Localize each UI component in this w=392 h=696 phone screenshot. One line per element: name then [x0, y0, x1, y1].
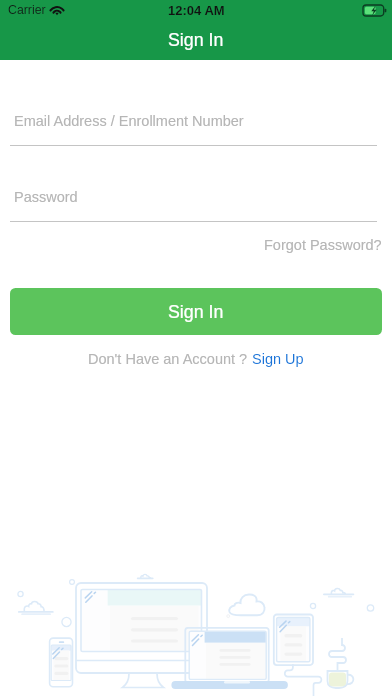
button[interactable]: Forgot Password?	[264, 237, 382, 253]
button[interactable]: Sign In	[10, 288, 382, 335]
staticText: Sign In	[168, 302, 224, 322]
button[interactable]: Sign Up	[252, 351, 304, 367]
other: Battery charging	[363, 5, 386, 16]
staticText: Sign Up	[252, 351, 304, 367]
staticText: Carrier	[8, 3, 46, 17]
staticText: Email Address / Enrollment Number	[14, 113, 244, 129]
staticText: Forgot Password?	[264, 237, 382, 253]
staticText: Password	[14, 189, 78, 205]
staticText: Sign In	[168, 30, 224, 50]
staticText: Don't Have an Account ?	[88, 351, 252, 367]
staticText: 12:04 AM	[168, 3, 225, 18]
